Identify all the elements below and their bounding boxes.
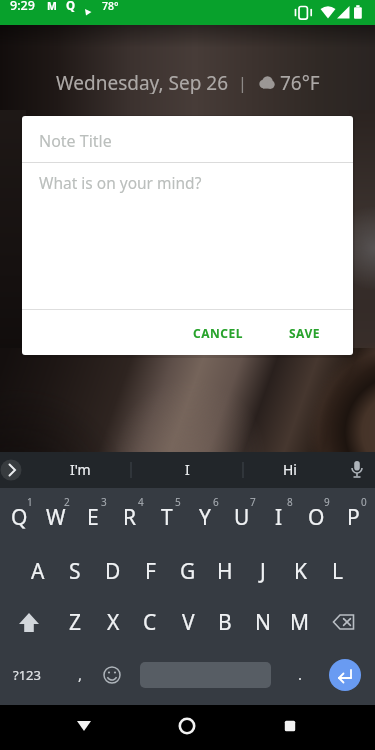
button[interactable]: ?123 <box>0 655 107 695</box>
staticText: Hi <box>283 460 297 479</box>
staticText: D <box>105 557 121 586</box>
button[interactable]: U <box>224 494 260 540</box>
staticText: 9:29 <box>10 0 35 14</box>
staticText: J <box>260 557 266 586</box>
button[interactable]: A <box>20 548 56 594</box>
staticText: C <box>143 608 157 637</box>
button[interactable]: W <box>38 494 74 540</box>
button[interactable] <box>0 705 125 750</box>
staticText: N <box>255 608 271 637</box>
staticText: 1 <box>27 495 33 509</box>
staticText: CANCEL <box>193 325 243 341</box>
button[interactable]: N <box>245 599 281 645</box>
staticText: P <box>347 503 360 532</box>
staticText: SAVE <box>289 325 320 341</box>
staticText: H <box>217 557 233 586</box>
button[interactable]: Wednesday, Sep 26 <box>0 70 375 94</box>
staticText: Note Title <box>39 130 112 152</box>
staticText: | <box>229 71 257 94</box>
button[interactable]: Hi <box>210 449 370 489</box>
button[interactable]: T <box>149 494 185 540</box>
staticText: 8 <box>287 495 293 509</box>
staticText: , <box>78 664 83 684</box>
staticText: 0 <box>361 495 367 509</box>
button[interactable]: D <box>95 548 131 594</box>
staticText: Q <box>11 503 28 532</box>
button[interactable]: H <box>207 548 243 594</box>
button[interactable]: SAVE <box>274 315 334 351</box>
button[interactable]: K <box>282 548 318 594</box>
staticText: What is on your mind? <box>39 172 202 193</box>
staticText: 3 <box>101 495 107 509</box>
button[interactable]: I <box>261 494 297 540</box>
staticText: E <box>87 503 99 532</box>
button[interactable] <box>250 705 375 750</box>
button[interactable]: I'm <box>0 449 160 489</box>
staticText: 6 <box>213 495 219 509</box>
staticText: M <box>47 0 57 13</box>
button[interactable]: P <box>335 494 371 540</box>
button[interactable]: S <box>57 548 93 594</box>
staticText: Wednesday, Sep 26 <box>56 70 229 94</box>
staticText: I <box>275 503 283 532</box>
staticText: I <box>185 460 190 479</box>
staticText: 9 <box>324 495 330 509</box>
staticText: K <box>294 557 307 586</box>
staticText: X <box>107 608 120 637</box>
staticText: O <box>308 503 325 532</box>
button[interactable]: What is on your mind? <box>39 172 338 194</box>
staticText: 7 <box>250 495 256 509</box>
staticText: 2 <box>64 495 70 509</box>
staticText: Z <box>69 608 82 637</box>
button[interactable]: Q <box>1 494 37 540</box>
button[interactable]: . <box>220 654 375 694</box>
button[interactable]: M <box>282 599 318 645</box>
button[interactable]: Y <box>187 494 223 540</box>
staticText: U <box>234 503 250 532</box>
button[interactable]: B <box>207 599 243 645</box>
staticText: 4 <box>138 495 144 509</box>
staticText: 76°F <box>275 70 320 94</box>
staticText: B <box>218 608 232 637</box>
button[interactable]: J <box>245 548 281 594</box>
staticText: F <box>145 557 156 586</box>
staticText: A <box>31 557 45 586</box>
button[interactable] <box>329 659 361 691</box>
staticText: G <box>180 557 196 586</box>
button[interactable]: R <box>112 494 148 540</box>
staticText: 78° <box>102 0 119 13</box>
staticText: S <box>69 557 81 586</box>
button[interactable]: O <box>298 494 334 540</box>
staticText: W <box>46 503 66 532</box>
staticText: L <box>332 557 344 586</box>
staticText: T <box>161 503 173 532</box>
staticText: M <box>290 608 310 637</box>
button[interactable]: L <box>320 548 356 594</box>
button[interactable]: I <box>107 449 267 489</box>
button[interactable]: , <box>0 654 160 694</box>
staticText: ?123 <box>13 666 41 684</box>
staticText: R <box>123 503 137 532</box>
button[interactable]: Note Title <box>39 130 338 152</box>
button[interactable]: E <box>75 494 111 540</box>
button[interactable]: CANCEL <box>182 315 254 351</box>
button[interactable]: C <box>132 599 168 645</box>
staticText: 5 <box>175 495 181 509</box>
button[interactable]: Z <box>57 599 93 645</box>
staticText: Q <box>66 0 76 14</box>
button[interactable] <box>125 705 250 750</box>
button[interactable]: F <box>132 548 168 594</box>
button[interactable]: X <box>95 599 131 645</box>
button[interactable]: V <box>170 599 206 645</box>
staticText: . <box>298 664 303 684</box>
button[interactable]: G <box>170 548 206 594</box>
staticText: Y <box>199 503 211 532</box>
staticText: V <box>182 608 195 637</box>
staticText: I'm <box>70 460 91 479</box>
